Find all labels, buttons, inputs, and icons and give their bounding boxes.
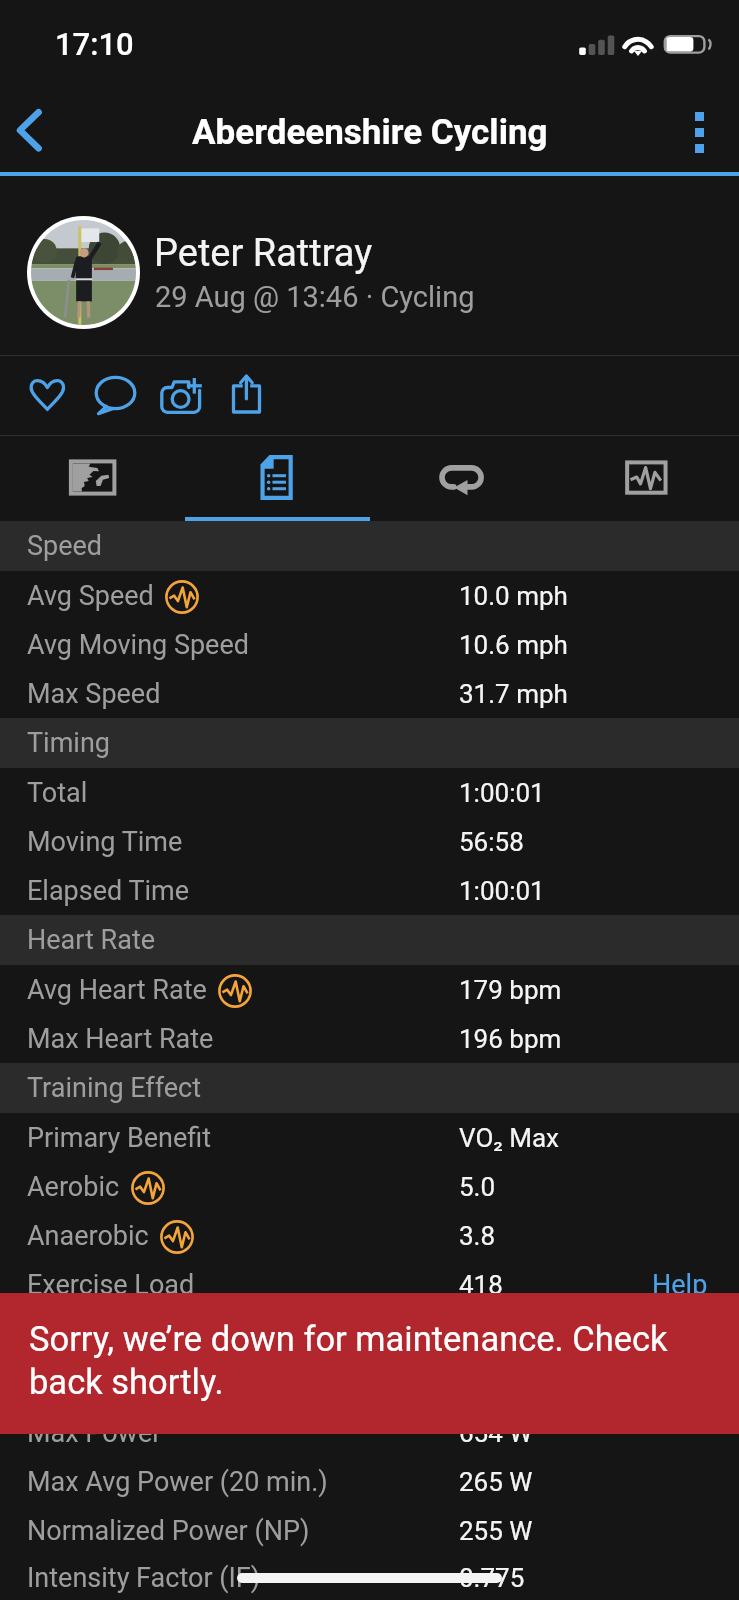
button[interactable]: Max Heart Rate bbox=[0, 1014, 739, 1063]
button[interactable]: Moving Time bbox=[0, 817, 739, 866]
button[interactable]: Avg Moving Speed bbox=[0, 620, 739, 669]
staticText: 265 W bbox=[459, 1467, 533, 1497]
button[interactable]: Add photo bbox=[149, 356, 215, 422]
button[interactable]: More options bbox=[659, 90, 739, 175]
button[interactable]: Avg Power bbox=[0, 1359, 739, 1408]
button[interactable]: Help bbox=[652, 1260, 708, 1309]
staticText: 31.7 mph bbox=[459, 679, 568, 709]
staticText: 10.0 mph bbox=[459, 581, 568, 611]
button[interactable]: Sorry, we’re down for maintenance. Check… bbox=[0, 1293, 739, 1434]
staticText: 1:00:01 bbox=[459, 876, 545, 906]
button[interactable]: Max Avg Power (20 min.) bbox=[0, 1457, 739, 1506]
staticText: 3.8 bbox=[459, 1221, 496, 1251]
staticText: 418 bbox=[459, 1270, 503, 1300]
button[interactable]: Peter Rattray bbox=[0, 175, 739, 355]
staticText: Primary Benefit bbox=[27, 1122, 212, 1154]
button[interactable]: Like bbox=[16, 356, 82, 422]
staticText: Speed bbox=[27, 530, 103, 562]
button[interactable]: Exercise Load bbox=[0, 1260, 739, 1309]
staticText: Anaerobic bbox=[27, 1220, 149, 1252]
button[interactable]: Back bbox=[0, 90, 72, 175]
button[interactable]: Share bbox=[215, 356, 281, 422]
staticText: 0.775 bbox=[459, 1563, 525, 1593]
button[interactable]: Anaerobic bbox=[0, 1211, 739, 1260]
button[interactable]: Total bbox=[0, 768, 739, 817]
staticText: Aerobic bbox=[27, 1171, 120, 1203]
staticText: Elapsed Time bbox=[27, 875, 190, 907]
staticText: 179 bpm bbox=[459, 975, 562, 1005]
staticText: Moving Time bbox=[27, 826, 183, 858]
staticText: Avg Power bbox=[27, 1368, 155, 1400]
staticText: Max Heart Rate bbox=[27, 1023, 214, 1055]
button[interactable]: Charts bbox=[554, 436, 739, 521]
button[interactable]: Normalized Power (NP) bbox=[0, 1506, 739, 1555]
staticText: Training Effect bbox=[27, 1072, 202, 1104]
staticText: Sorry, we’re down for maintenance. Check… bbox=[29, 1319, 729, 1402]
button[interactable]: Details bbox=[184, 436, 369, 521]
button[interactable]: Map bbox=[0, 436, 184, 521]
staticText: Max Power bbox=[27, 1417, 162, 1449]
staticText: 5.0 bbox=[459, 1172, 496, 1202]
staticText: Timing bbox=[27, 727, 110, 759]
button[interactable]: Aerobic bbox=[0, 1162, 739, 1211]
staticText: 654 W bbox=[459, 1418, 533, 1448]
staticText: 196 bpm bbox=[459, 1024, 562, 1054]
staticText: Aberdeenshire Cycling bbox=[192, 112, 548, 153]
staticText: Avg Heart Rate bbox=[27, 974, 207, 1006]
staticText: Intensity Factor (IF) bbox=[27, 1562, 261, 1594]
button[interactable]: Comment bbox=[82, 356, 148, 422]
staticText: Avg Moving Speed bbox=[27, 629, 249, 661]
staticText: Avg Speed bbox=[27, 580, 154, 612]
staticText: 56:58 bbox=[459, 827, 524, 857]
staticText: Power bbox=[27, 1318, 104, 1350]
button[interactable]: Elapsed Time bbox=[0, 866, 739, 915]
staticText: 17:10 bbox=[55, 26, 134, 62]
staticText: Exercise Load bbox=[27, 1269, 195, 1301]
staticText: Normalized Power (NP) bbox=[27, 1515, 310, 1547]
staticText: Max Speed bbox=[27, 678, 161, 710]
staticText: VO₂ Max bbox=[459, 1123, 560, 1153]
button[interactable]: Max Power bbox=[0, 1408, 739, 1457]
button[interactable]: Avg Speed bbox=[0, 571, 739, 620]
staticText: 255 W bbox=[459, 1516, 533, 1546]
staticText: Help bbox=[652, 1269, 708, 1301]
staticText: Total bbox=[27, 777, 88, 809]
staticText: Peter Rattray bbox=[154, 231, 373, 276]
staticText: Max Avg Power (20 min.) bbox=[27, 1466, 328, 1498]
button[interactable]: Max Speed bbox=[0, 669, 739, 718]
button[interactable]: Laps bbox=[369, 436, 554, 521]
button[interactable]: Avg Heart Rate bbox=[0, 965, 739, 1014]
staticText: 29 Aug @ 13:46 · Cycling bbox=[155, 280, 475, 314]
staticText: 1:00:01 bbox=[459, 778, 545, 808]
staticText: Heart Rate bbox=[27, 924, 156, 956]
button[interactable]: Primary Benefit bbox=[0, 1113, 739, 1162]
staticText: 10.6 mph bbox=[459, 630, 568, 660]
button[interactable]: Intensity Factor (IF) bbox=[0, 1555, 739, 1600]
